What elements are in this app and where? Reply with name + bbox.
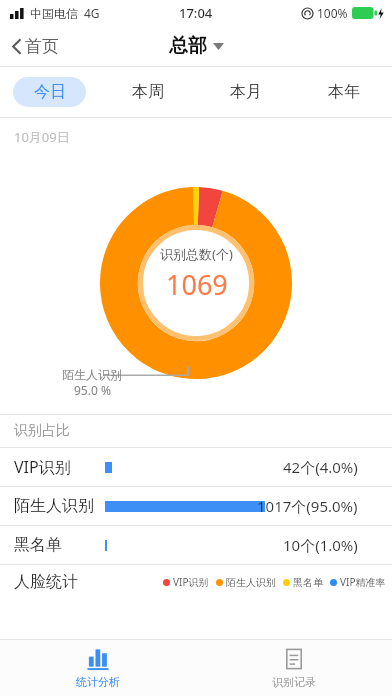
staticText: VIP识别 — [173, 575, 209, 589]
staticText: 识别总数(个) — [160, 245, 233, 263]
staticText: VIP精准率 — [340, 575, 386, 589]
button[interactable]: 本周 — [111, 77, 184, 107]
button[interactable]: 本月 — [209, 77, 282, 107]
staticText: 首页 — [25, 36, 59, 57]
button[interactable]: 识别记录 — [196, 640, 392, 696]
button[interactable]: 今日 — [13, 77, 86, 107]
staticText: VIP识别 — [14, 456, 71, 478]
button[interactable]: VIP识别 — [0, 448, 392, 486]
staticText: 总部 — [169, 34, 207, 58]
staticText: 本年 — [328, 82, 360, 102]
staticText: 识别记录 — [272, 675, 316, 689]
button[interactable]: 首页 — [0, 30, 71, 63]
button[interactable]: 黑名单 — [0, 526, 392, 564]
staticText: 本周 — [132, 82, 164, 102]
staticText: 统计分析 — [76, 675, 120, 689]
staticText: 本月 — [230, 82, 262, 102]
staticText: 今日 — [34, 82, 66, 102]
staticText: 陌生人识别 — [226, 576, 276, 589]
staticText: 中国电信 — [30, 6, 78, 21]
staticText: 10个(1.0%) — [283, 535, 358, 555]
staticText: 10月09日 — [14, 128, 70, 146]
staticText: 黑名单 — [14, 535, 62, 555]
staticText: 陌生人识别 — [14, 496, 94, 516]
staticText: 陌生人识别 — [62, 367, 122, 382]
staticText: 4G — [84, 5, 100, 21]
button[interactable]: 陌生人识别 — [0, 487, 392, 525]
staticText: 1069 — [166, 266, 228, 303]
button[interactable]: 总部 — [161, 30, 232, 62]
staticText: 42个(4.0%) — [283, 457, 358, 477]
staticText: 识别占比 — [14, 422, 70, 440]
staticText: 人脸统计 — [14, 572, 78, 592]
staticText: 95.0 % — [74, 382, 111, 398]
staticText: 1017个(95.0%) — [257, 496, 358, 516]
staticText: 17:04 — [179, 4, 213, 22]
button[interactable]: 统计分析 — [0, 640, 196, 696]
staticText: 100% — [317, 5, 348, 21]
button[interactable]: 本年 — [307, 77, 380, 107]
staticText: 黑名单 — [293, 576, 323, 589]
